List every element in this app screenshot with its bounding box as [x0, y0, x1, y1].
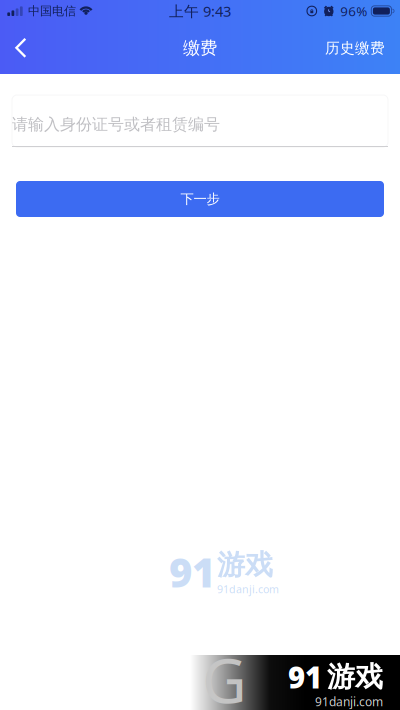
staticText: 游戏	[327, 660, 383, 694]
staticText: G	[202, 639, 247, 710]
staticText: 下一步	[180, 191, 219, 207]
staticText: 91danji.com	[315, 693, 383, 709]
staticText: 中国电信	[28, 4, 76, 18]
staticText: 游戏	[217, 548, 273, 582]
button[interactable]: 历史缴费	[313, 26, 397, 70]
button[interactable]: 下一步	[16, 181, 384, 217]
staticText: 缴费	[183, 37, 217, 59]
staticText: 上午 9:43	[169, 1, 231, 21]
button[interactable]: 返回	[3, 26, 39, 70]
staticText: 91danji.com	[217, 582, 279, 596]
staticText: 历史缴费	[325, 39, 385, 57]
staticText: 91	[288, 658, 322, 697]
staticText: 请输入身份证号或者租赁编号	[12, 115, 220, 134]
staticText: 96%	[340, 2, 367, 20]
staticText: 91	[169, 545, 215, 598]
